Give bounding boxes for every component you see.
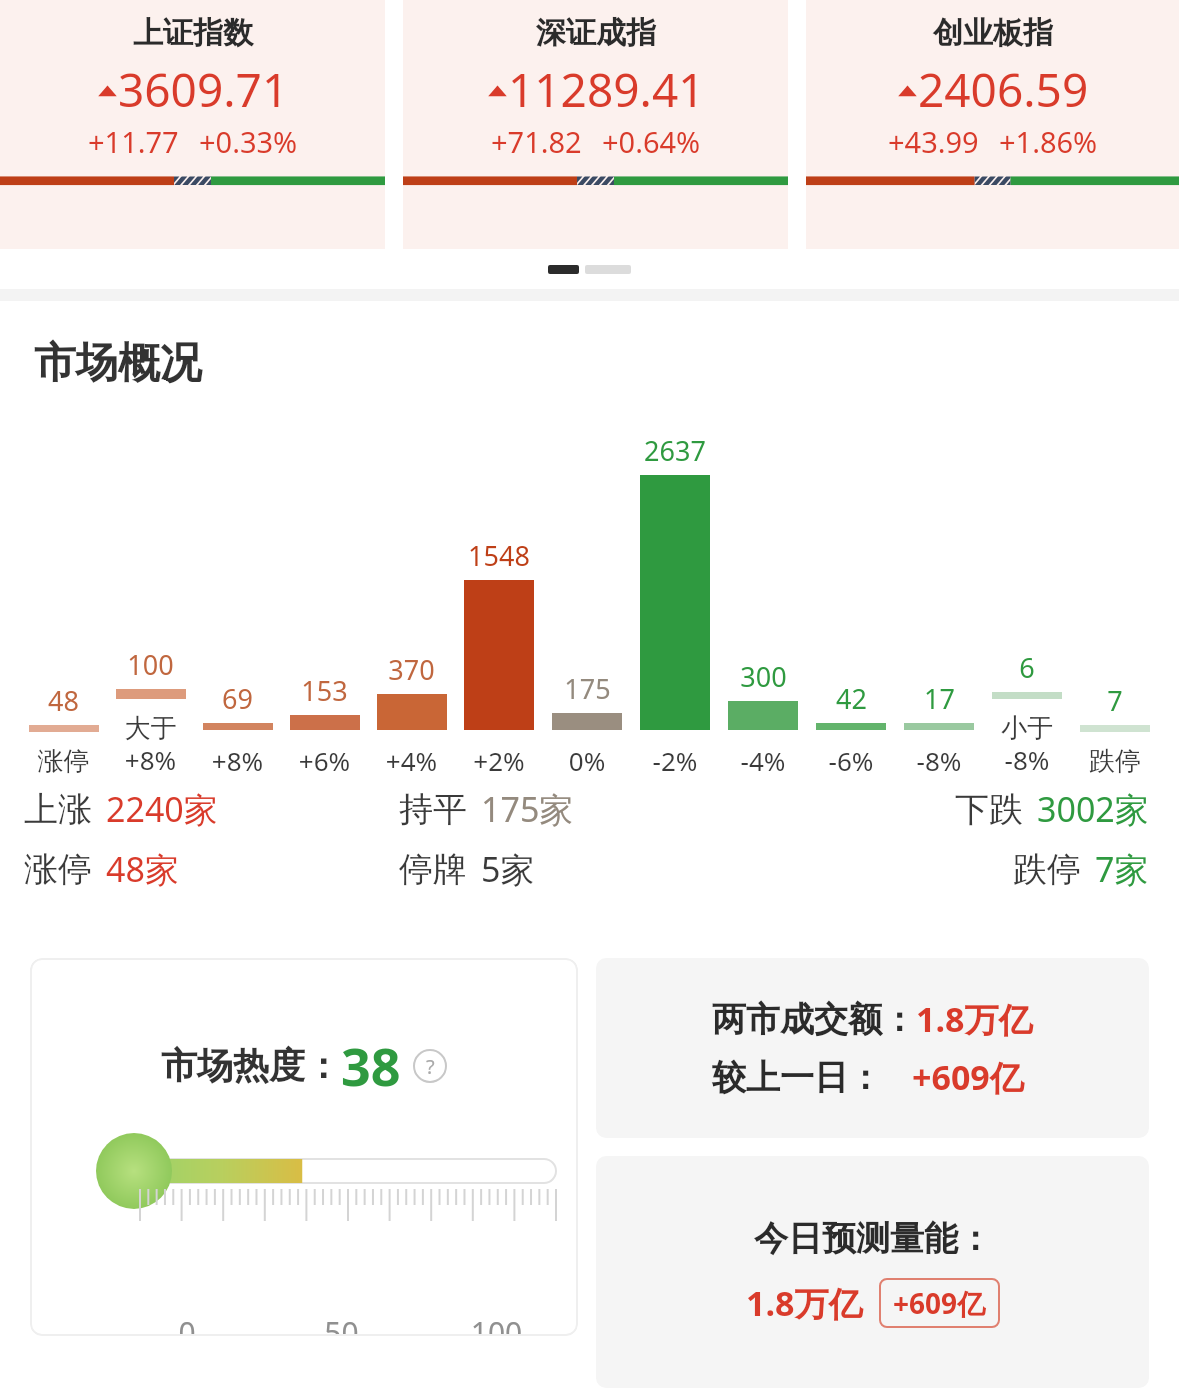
button[interactable]: +609亿 [893,1284,986,1322]
staticText: 涨停 [24,848,92,891]
button[interactable]: 帮助说明 [413,1049,447,1083]
staticText: 6 [1019,649,1035,686]
staticText: -8% [895,743,983,778]
staticText: 1.8万亿 [746,1280,863,1326]
staticText: 较上一日： [712,1056,882,1099]
staticText: 上涨 [24,788,92,831]
staticText: 7家 [1095,846,1149,892]
staticText: 17 [924,680,955,717]
staticText: 3609.71 [118,58,289,121]
staticText: -2% [631,743,719,778]
staticText: 69 [222,680,253,717]
staticText: 48家 [106,846,179,892]
staticText: +0.64% [602,122,701,161]
staticText: +609亿 [912,1054,1024,1100]
staticText: 11289.41 [508,58,705,121]
button[interactable]: 42 [807,390,895,778]
staticText: 持平 [399,788,467,831]
button[interactable]: 175 [543,390,631,778]
button[interactable]: 市场热度： [30,958,578,1336]
staticText: 1.8万亿 [916,996,1033,1042]
staticText: 5家 [481,846,535,892]
button[interactable]: 2637 [631,390,719,778]
staticText: 市场热度： [161,1043,341,1088]
staticText: 2406.59 [918,58,1089,121]
staticText: 大于 +8% [107,712,194,778]
staticText: 小于 -8% [983,712,1071,778]
staticText: 175家 [481,786,574,832]
staticText: +71.82 [491,122,582,161]
button[interactable]: 153 [281,390,368,778]
button[interactable]: 17 [895,390,983,778]
staticText: 7 [1107,682,1123,719]
staticText: 涨停 [20,745,107,778]
staticText: 0 [110,1312,264,1336]
button[interactable]: 69 [194,390,281,778]
staticText: 下跌 [955,788,1023,831]
staticText: 0% [543,743,631,778]
staticText: +2% [455,743,543,778]
staticText: 1548 [468,537,530,574]
staticText: 2637 [644,432,706,469]
button[interactable]: 370 [368,390,455,778]
staticText: +8% [194,743,281,778]
staticText: 300 [740,658,787,695]
staticText: +43.99 [888,122,979,161]
staticText: +0.33% [199,122,298,161]
staticText: 两市成交额： [712,998,916,1041]
button[interactable]: 深证成指 [403,0,788,249]
staticText: 3002家 [1037,786,1149,832]
button[interactable]: 48 [20,390,107,778]
staticText: 100 [419,1312,574,1336]
button[interactable]: 7 [1071,390,1159,778]
staticText: +4% [368,743,455,778]
staticText: ? [426,1053,435,1080]
staticText: +609亿 [893,1284,986,1322]
staticText: 2240家 [106,786,218,832]
staticText: 上证指数 [133,14,253,52]
staticText: 42 [836,680,867,717]
staticText: 跌停 [1071,745,1159,778]
staticText: 370 [388,651,435,688]
staticText: +11.77 [88,122,179,161]
button[interactable]: 1548 [455,390,543,778]
staticText: +1.86% [999,122,1098,161]
button[interactable]: 6 [983,390,1071,778]
staticText: 跌停 [1013,848,1081,891]
button[interactable]: 300 [719,390,807,778]
staticText: 100 [127,646,174,683]
staticText: -6% [807,743,895,778]
staticText: 50 [264,1312,419,1336]
button[interactable]: 100 [107,390,194,778]
button[interactable]: 创业板指 [806,0,1179,249]
button[interactable]: 上证指数 [0,0,385,249]
staticText: 48 [48,682,79,719]
staticText: 创业板指 [933,14,1053,52]
staticText: 今日预测量能： [754,1217,992,1260]
button[interactable]: 两市成交额： [596,958,1149,1138]
staticText: 市场概况 [34,337,202,390]
staticText: +6% [281,743,368,778]
staticText: 153 [301,672,348,709]
staticText: 深证成指 [536,14,656,52]
staticText: 175 [564,670,611,707]
staticText: 停牌 [399,848,467,891]
staticText: 38 [341,1030,401,1101]
button[interactable]: 今日预测量能： [596,1156,1149,1388]
staticText: -4% [719,743,807,778]
